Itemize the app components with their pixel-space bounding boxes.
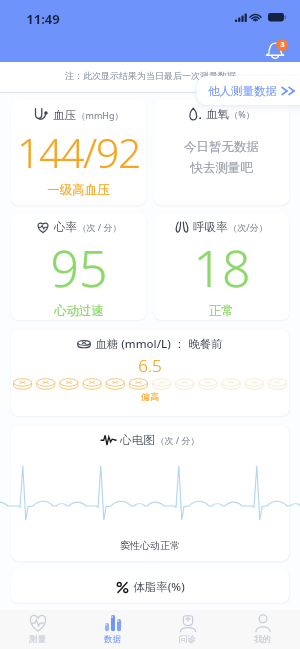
staticText: 快去测量吧 — [190, 160, 253, 176]
staticText: 6.5 — [138, 354, 162, 377]
staticText: 血氧 — [206, 107, 229, 121]
staticText: 他人测量数据 — [208, 84, 277, 98]
staticText: 心动过速 — [54, 303, 104, 319]
staticText: （次/分） — [228, 221, 268, 233]
staticText: 呼吸率 — [193, 220, 228, 234]
staticText: （次 / 分） — [77, 221, 122, 233]
button[interactable]: 血糖 (mmol/L) ： 晚餐前 — [11, 329, 289, 416]
button[interactable]: Notifications — [264, 38, 288, 62]
staticText: 3 — [280, 40, 285, 50]
staticText: 正常 — [209, 303, 234, 319]
button[interactable]: 他人测量数据 — [197, 76, 300, 105]
staticText: 窦性心动正常 — [120, 539, 180, 552]
staticText: 偏高 — [141, 391, 159, 402]
staticText: （mmHg） — [76, 109, 124, 121]
button[interactable]: 心率 — [11, 213, 146, 320]
staticText: 问诊 — [179, 634, 196, 645]
staticText: 心电图 — [120, 433, 155, 447]
staticText: 血糖 (mmol/L) ： 晚餐前 — [95, 336, 223, 352]
staticText: 注：此次显示结果为当日最后一次测量数据 — [65, 70, 236, 81]
staticText: 今日暂无数据 — [184, 139, 259, 155]
staticText: 测量 — [29, 634, 46, 645]
staticText: 血压 — [53, 108, 76, 122]
button[interactable]: 体脂率(%) — [11, 570, 289, 603]
staticText: 95 — [50, 234, 108, 302]
staticText: 数据 — [104, 634, 121, 645]
button[interactable]: 血压 — [11, 100, 146, 205]
staticText: 我的 — [254, 634, 271, 645]
staticText: 心率 — [54, 220, 77, 234]
button[interactable]: 问诊 — [150, 610, 225, 649]
staticText: （%） — [229, 108, 255, 120]
staticText: 体脂率(%) — [133, 579, 185, 595]
button[interactable]: 数据 — [75, 610, 150, 649]
button[interactable]: 测量 — [0, 610, 75, 649]
button[interactable]: 血氧 — [154, 100, 289, 205]
staticText: （次 / 分） — [155, 434, 200, 446]
staticText: 一级高血压 — [47, 182, 110, 198]
button[interactable]: 我的 — [225, 610, 300, 649]
button[interactable]: 心电图 — [11, 425, 289, 561]
staticText: 144/92 — [17, 124, 140, 180]
button[interactable]: 呼吸率 — [154, 213, 289, 320]
staticText: 18 — [193, 234, 251, 302]
staticText: 11:49 — [26, 10, 60, 28]
